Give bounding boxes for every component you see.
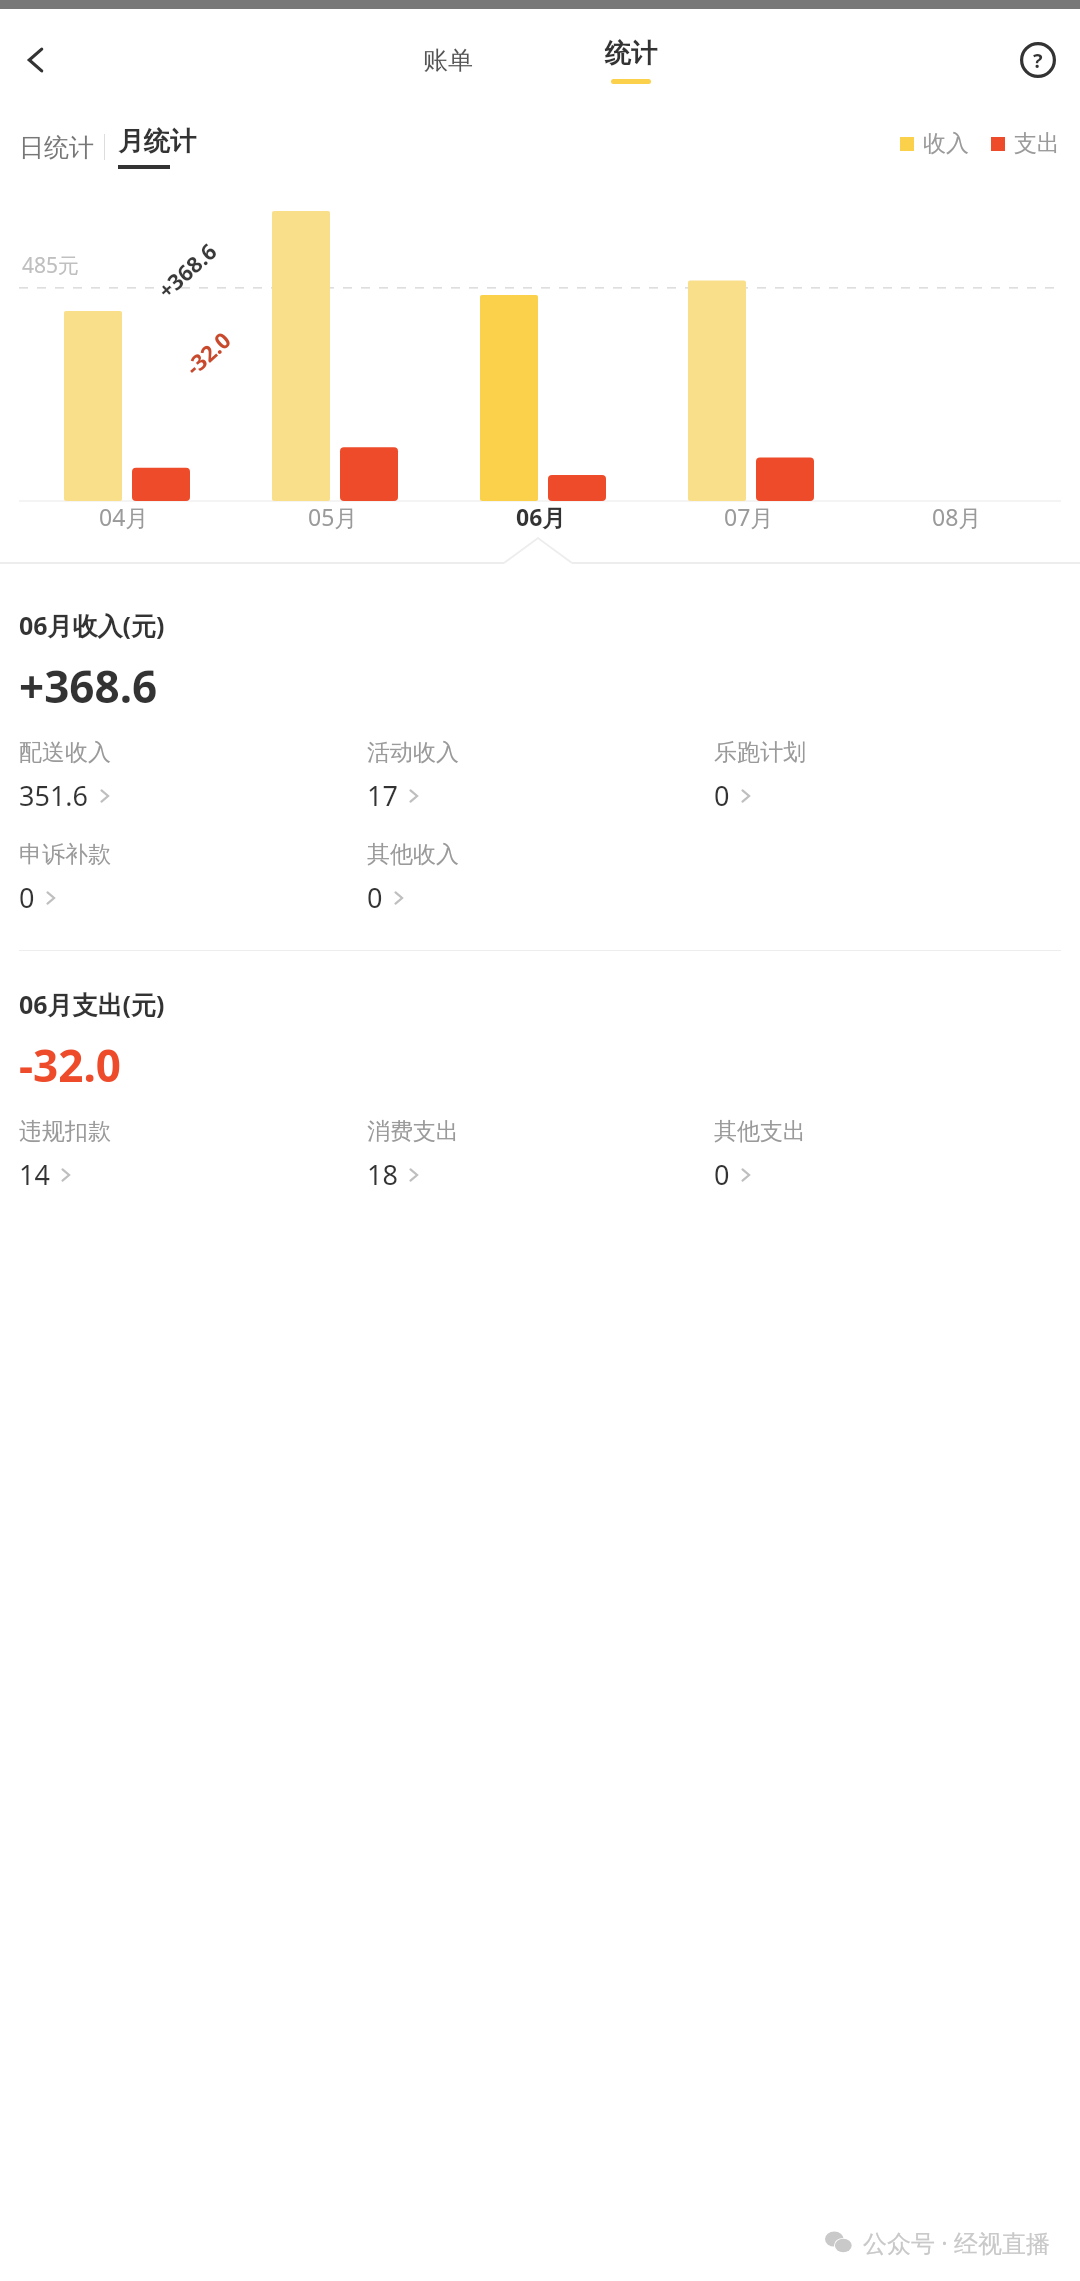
staticText: 0 (19, 879, 35, 916)
staticText: 351.6 (19, 777, 89, 814)
staticText: 17 (367, 777, 398, 814)
staticText: 0 (714, 777, 730, 814)
button[interactable]: 其他支出 (714, 1117, 1061, 1193)
staticText: +368.6 (19, 656, 158, 716)
staticText: 04月 (99, 501, 149, 532)
staticText: 0 (714, 1156, 730, 1193)
staticText: 乐跑计划 (714, 738, 806, 767)
staticText: 18 (367, 1156, 398, 1193)
staticText: 账单 (423, 45, 473, 76)
button[interactable]: 乐跑计划 (714, 738, 1061, 814)
button[interactable]: 账单 (403, 45, 493, 76)
staticText: +368.6 (151, 235, 223, 304)
staticText: 其他收入 (367, 840, 459, 869)
staticText: 07月 (724, 501, 774, 532)
staticText: 其他支出 (714, 1117, 806, 1146)
button[interactable]: 配送收入 (19, 738, 367, 814)
staticText: 公众号 · 经视直播 (863, 2226, 1050, 2259)
staticText: 配送收入 (19, 738, 111, 767)
staticText: 08月 (932, 501, 982, 532)
button[interactable]: 违规扣款 (19, 1117, 367, 1193)
staticText: -32.0 (178, 325, 236, 381)
staticText: ? (1033, 47, 1043, 74)
button[interactable]: 申诉补款 (19, 840, 367, 916)
staticText: 14 (19, 1156, 50, 1193)
staticText: 日统计 (19, 132, 94, 163)
staticText: 活动收入 (367, 738, 459, 767)
button[interactable]: 日统计 (19, 132, 104, 163)
staticText: 月统计 (118, 125, 196, 158)
staticText: -32.0 (19, 1035, 121, 1095)
staticText: 05月 (308, 501, 358, 532)
button[interactable]: 其他收入 (367, 840, 714, 916)
button[interactable]: 统计 (585, 37, 677, 84)
button[interactable]: 消费支出 (367, 1117, 714, 1193)
staticText: 06月支出(元) (19, 987, 165, 1021)
button[interactable]: Back (8, 32, 64, 88)
staticText: 消费支出 (367, 1117, 459, 1146)
button[interactable]: 07月 (645, 501, 853, 532)
button[interactable]: 08月 (853, 501, 1061, 532)
staticText: 申诉补款 (19, 840, 111, 869)
staticText: 485元 (22, 251, 80, 280)
staticText: 06月 (516, 501, 566, 532)
staticText: 统计 (605, 37, 657, 70)
button[interactable]: 月统计 (105, 125, 196, 169)
staticText: 06月收入(元) (19, 608, 165, 642)
button[interactable]: 05月 (228, 501, 437, 532)
staticText: 支出 (1014, 129, 1060, 158)
button[interactable]: 06月 (437, 501, 645, 532)
staticText: 收入 (923, 129, 969, 158)
button[interactable]: 活动收入 (367, 738, 714, 814)
button[interactable]: 04月 (19, 501, 228, 532)
staticText: 违规扣款 (19, 1117, 111, 1146)
button[interactable]: Help (1010, 32, 1066, 88)
staticText: 0 (367, 879, 383, 916)
